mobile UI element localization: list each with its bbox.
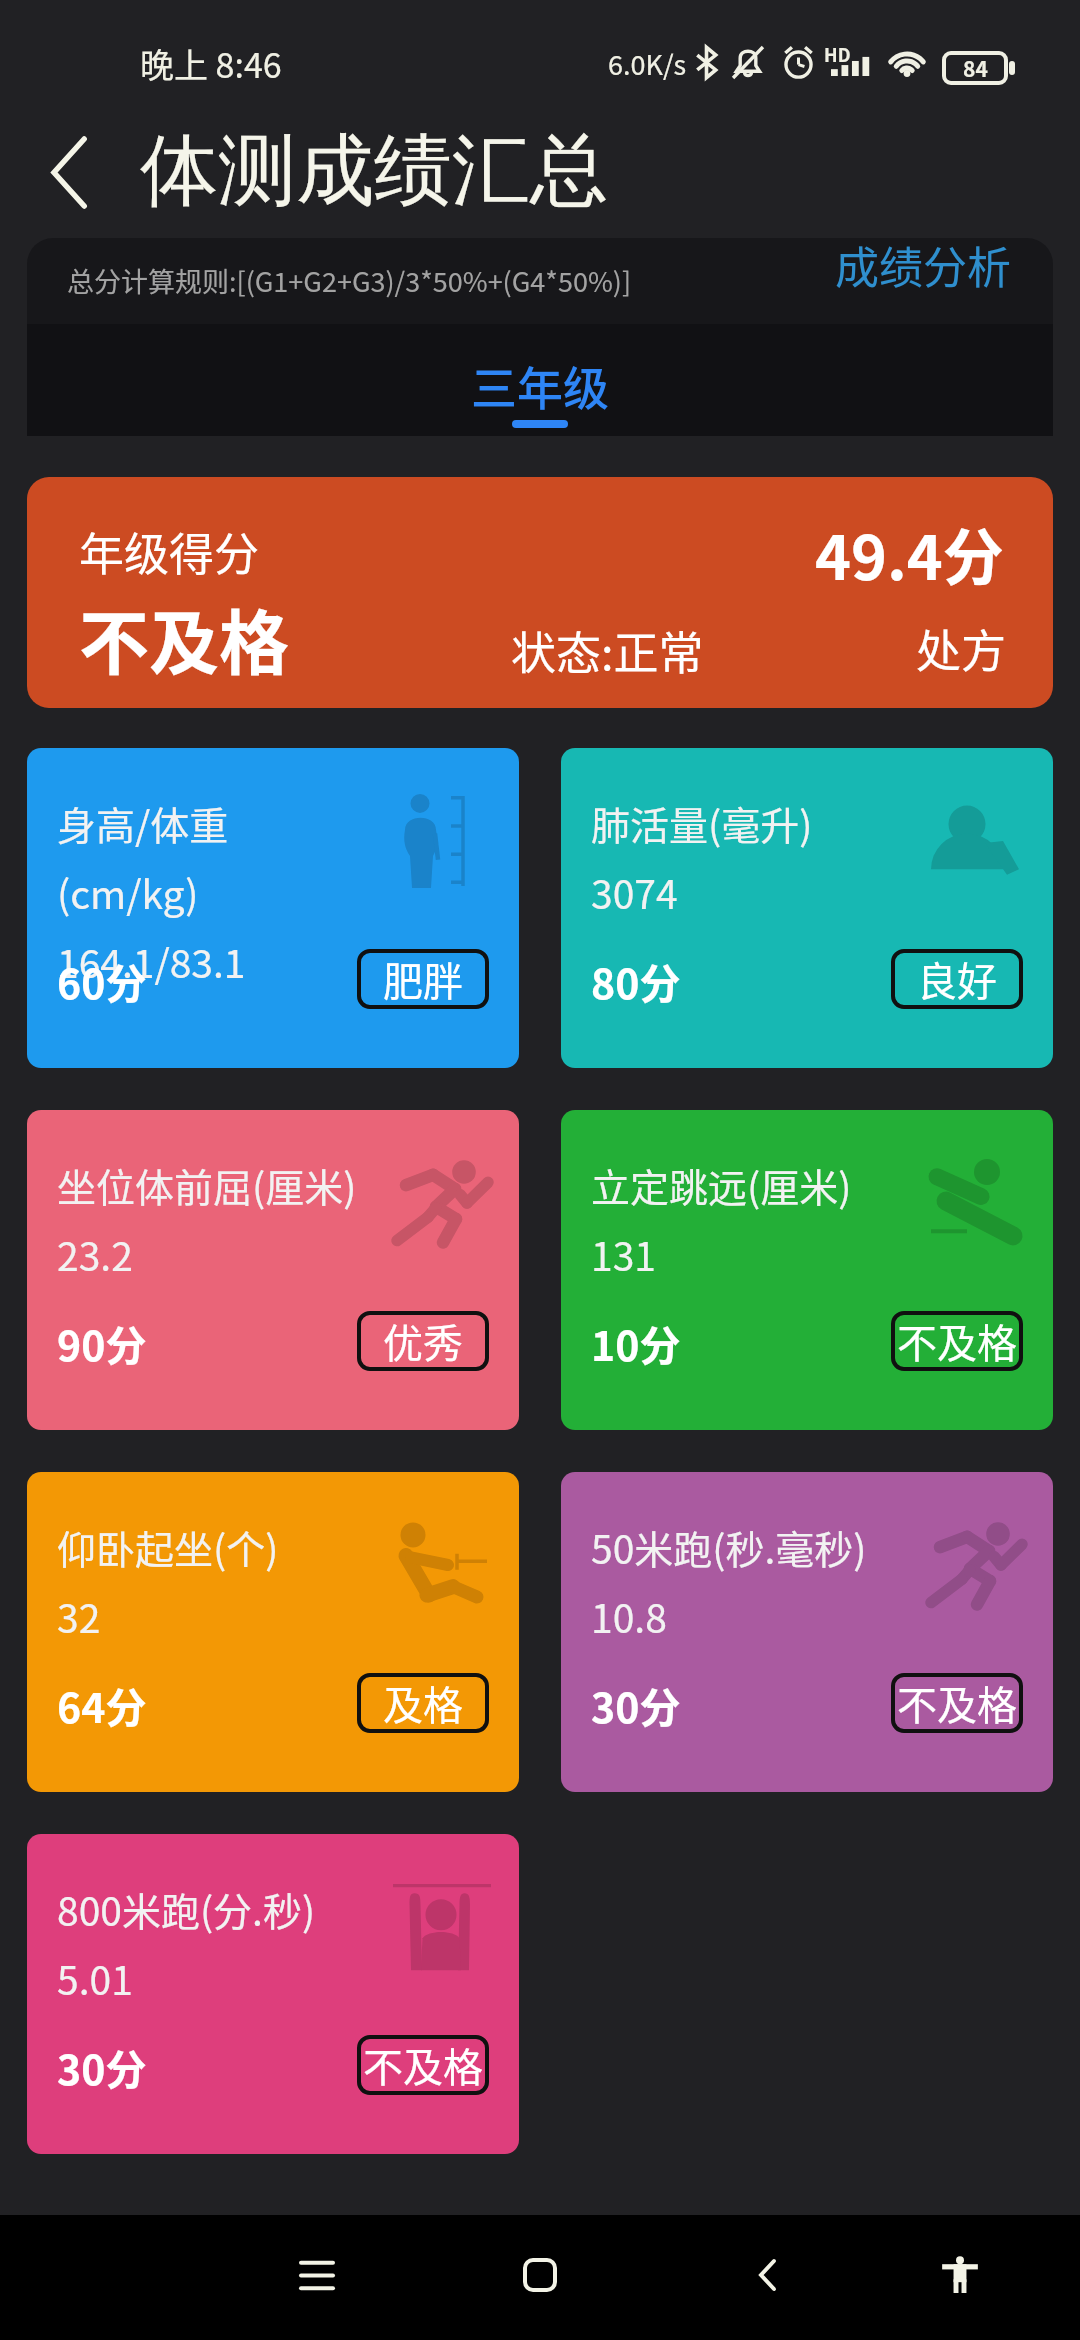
staticText: 晚上 8:46 [140, 39, 282, 88]
button[interactable]: 肺活量(毫升) 3074 [561, 748, 1053, 1068]
button[interactable]: 800米跑(分.秒) 5.01 [27, 1834, 519, 2154]
staticText: 50米跑(秒.毫秒) 10.8 [591, 1519, 867, 1645]
staticText: 不及格 [897, 1674, 1017, 1732]
staticText: 优秀 [383, 1312, 463, 1370]
staticText: 84 [963, 53, 988, 83]
button[interactable]: 优秀 [357, 1311, 489, 1371]
button[interactable]: 不及格 [891, 1311, 1023, 1371]
button[interactable]: Accessibility [905, 2220, 1015, 2330]
staticText: 成绩分析 [835, 233, 1011, 297]
button[interactable]: 处方 [896, 616, 1026, 678]
button[interactable]: 三年级 [420, 324, 660, 436]
staticText: 800米跑(分.秒) 5.01 [57, 1881, 316, 2007]
button[interactable]: 50米跑(秒.毫秒) 10.8 [561, 1472, 1053, 1792]
staticText: 年级得分 [79, 519, 260, 584]
staticText: 坐位体前屈(厘米) 23.2 [57, 1157, 357, 1283]
staticText: 30分 [591, 1675, 681, 1734]
staticText: 64分 [57, 1675, 147, 1734]
staticText: 及格 [383, 1674, 463, 1732]
button[interactable]: 立定跳远(厘米) 131 [561, 1110, 1053, 1430]
staticText: 体测成绩汇总 [140, 122, 608, 220]
button[interactable]: 年级得分 [27, 477, 1053, 708]
staticText: 不及格 [363, 2036, 483, 2094]
staticText: 不及格 [79, 588, 289, 689]
staticText: 80分 [591, 951, 681, 1010]
button[interactable]: 肥胖 [357, 949, 489, 1009]
staticText: 仰卧起坐(个) 32 [57, 1519, 279, 1645]
button[interactable]: Back [712, 2220, 822, 2330]
button[interactable]: 良好 [891, 949, 1023, 1009]
button[interactable]: 仰卧起坐(个) 32 [27, 1472, 519, 1792]
staticText: 良好 [917, 950, 997, 1008]
staticText: 身高/体重 (cm/kg) 164.1/83.1 [57, 795, 246, 990]
staticText: 90分 [57, 1313, 147, 1372]
staticText: 6.0K/s [608, 44, 687, 83]
staticText: 处方 [916, 616, 1007, 678]
button[interactable]: Home [485, 2220, 595, 2330]
button[interactable]: Back [22, 125, 116, 219]
staticText: 状态:正常 [511, 618, 704, 683]
button[interactable]: 及格 [357, 1673, 489, 1733]
button[interactable]: 坐位体前屈(厘米) 23.2 [27, 1110, 519, 1430]
staticText: 总分计算规则:[(G1+G2+G3)/3*50%+(G4*50%)] [67, 261, 632, 300]
staticText: 不及格 [897, 1312, 1017, 1370]
button[interactable]: 不及格 [891, 1673, 1023, 1733]
staticText: 立定跳远(厘米) 131 [591, 1157, 852, 1283]
button[interactable]: 不及格 [357, 2035, 489, 2095]
staticText: 10分 [591, 1313, 681, 1372]
button[interactable]: 身高/体重 (cm/kg) 164.1/83.1 [27, 748, 519, 1068]
staticText: 肺活量(毫升) 3074 [591, 795, 813, 921]
button[interactable]: 成绩分析 [823, 233, 1023, 297]
button[interactable]: Menu [262, 2220, 372, 2330]
staticText: 60分 [57, 951, 147, 1010]
staticText: 三年级 [471, 352, 609, 419]
staticText: 49.4分 [815, 509, 1004, 597]
staticText: 30分 [57, 2037, 147, 2096]
staticText: 肥胖 [383, 950, 463, 1008]
staticText: HD [824, 41, 851, 67]
